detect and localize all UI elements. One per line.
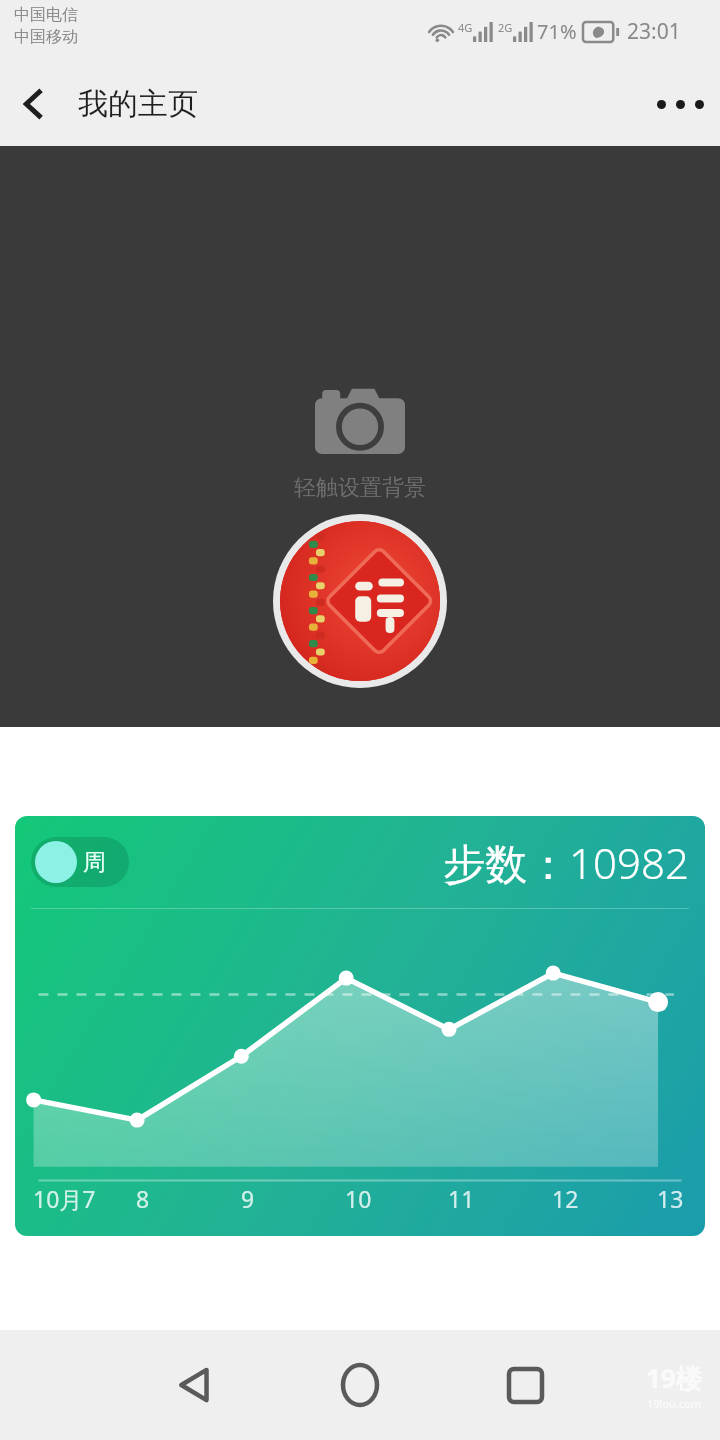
staticText: 9 — [241, 1183, 255, 1214]
staticText: 步数：10982 — [443, 834, 689, 891]
staticText: 2G — [498, 20, 513, 35]
staticText: 11 — [448, 1183, 475, 1214]
staticText: 10月7 — [33, 1183, 96, 1214]
button[interactable]: More options — [640, 64, 720, 144]
staticText: 中国电信 — [14, 5, 78, 25]
staticText: 19楼 — [646, 1360, 702, 1396]
staticText: 23:01 — [627, 17, 681, 46]
staticText: 我的主页 — [78, 85, 198, 123]
button[interactable]: Profile photo — [273, 514, 447, 688]
button[interactable]: Back — [140, 1330, 250, 1440]
staticText: 12 — [552, 1183, 579, 1214]
staticText: 轻触设置背景 — [294, 474, 426, 502]
staticText: 71% — [537, 18, 577, 45]
staticText: 13 — [657, 1183, 684, 1214]
staticText: 19lou.com — [647, 1396, 702, 1411]
button[interactable]: Home — [305, 1330, 415, 1440]
button[interactable]: 周 — [31, 837, 129, 887]
staticText: 4G — [458, 20, 473, 35]
staticText: 周 — [83, 848, 106, 877]
staticText: 10 — [345, 1183, 372, 1214]
staticText: 中国移动 — [14, 27, 78, 47]
button[interactable]: Recent apps — [470, 1330, 580, 1440]
staticText: 8 — [136, 1183, 150, 1214]
button[interactable]: 周 — [15, 816, 705, 1236]
button[interactable]: Back — [0, 70, 68, 138]
